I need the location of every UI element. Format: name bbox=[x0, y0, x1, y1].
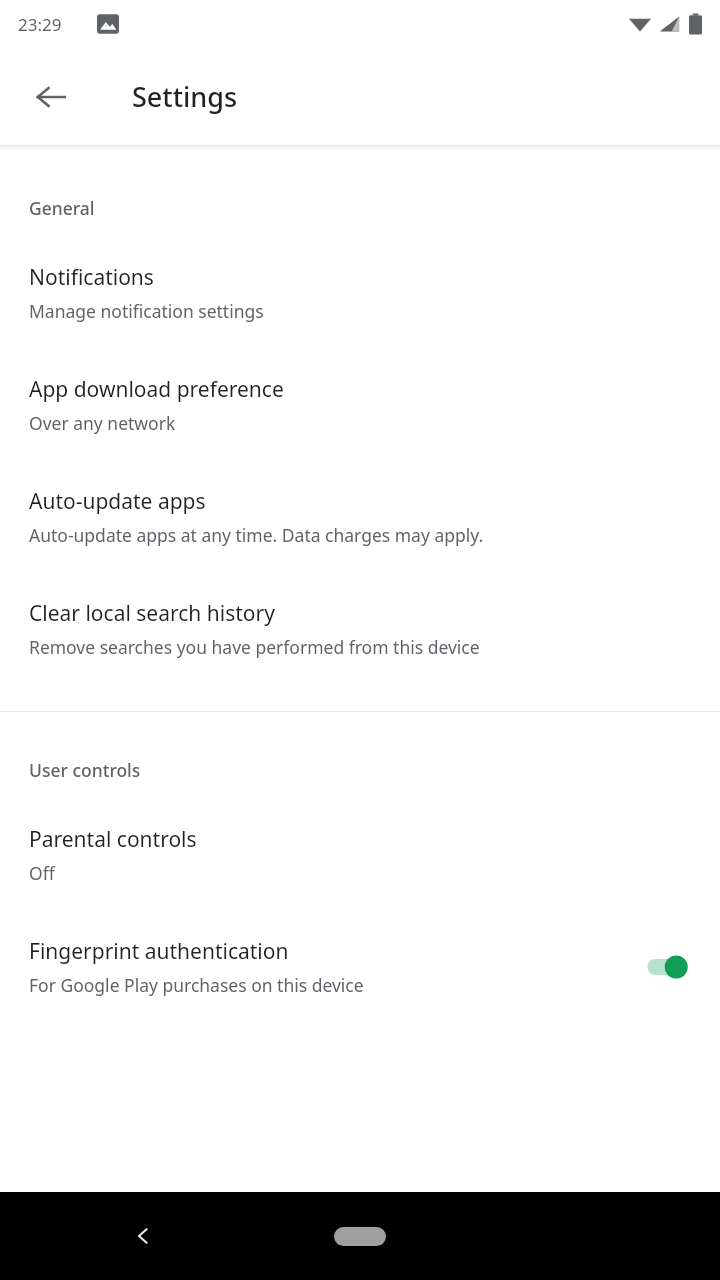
staticText: Remove searches you have performed from … bbox=[29, 635, 480, 659]
staticText: Parental controls bbox=[29, 825, 197, 854]
staticText: Settings bbox=[132, 78, 238, 115]
staticText: General bbox=[29, 196, 720, 220]
staticText: Auto-update apps at any time. Data charg… bbox=[29, 523, 484, 547]
button[interactable]: Home bbox=[324, 1216, 396, 1256]
staticText: 23:29 bbox=[18, 13, 62, 36]
staticText: User controls bbox=[29, 758, 720, 782]
staticText: Notifications bbox=[29, 263, 154, 292]
button[interactable]: Clear local search history bbox=[0, 599, 720, 659]
button[interactable]: Notifications bbox=[0, 263, 720, 323]
button[interactable]: App download preference bbox=[0, 375, 720, 435]
button[interactable]: Fingerprint authentication bbox=[0, 937, 720, 997]
button[interactable]: Auto-update apps bbox=[0, 487, 720, 547]
staticText: Clear local search history bbox=[29, 599, 275, 628]
staticText: Auto-update apps bbox=[29, 487, 206, 516]
staticText: Off bbox=[29, 861, 55, 885]
button[interactable]: Back bbox=[115, 1208, 171, 1264]
staticText: App download preference bbox=[29, 375, 284, 404]
button[interactable]: Fingerprint authentication toggle bbox=[640, 945, 696, 989]
staticText: Manage notification settings bbox=[29, 299, 264, 323]
staticText: Fingerprint authentication bbox=[29, 937, 289, 966]
button[interactable]: Back bbox=[21, 67, 81, 127]
button[interactable]: Parental controls bbox=[0, 825, 720, 885]
staticText: For Google Play purchases on this device bbox=[29, 973, 364, 997]
staticText: Over any network bbox=[29, 411, 176, 435]
